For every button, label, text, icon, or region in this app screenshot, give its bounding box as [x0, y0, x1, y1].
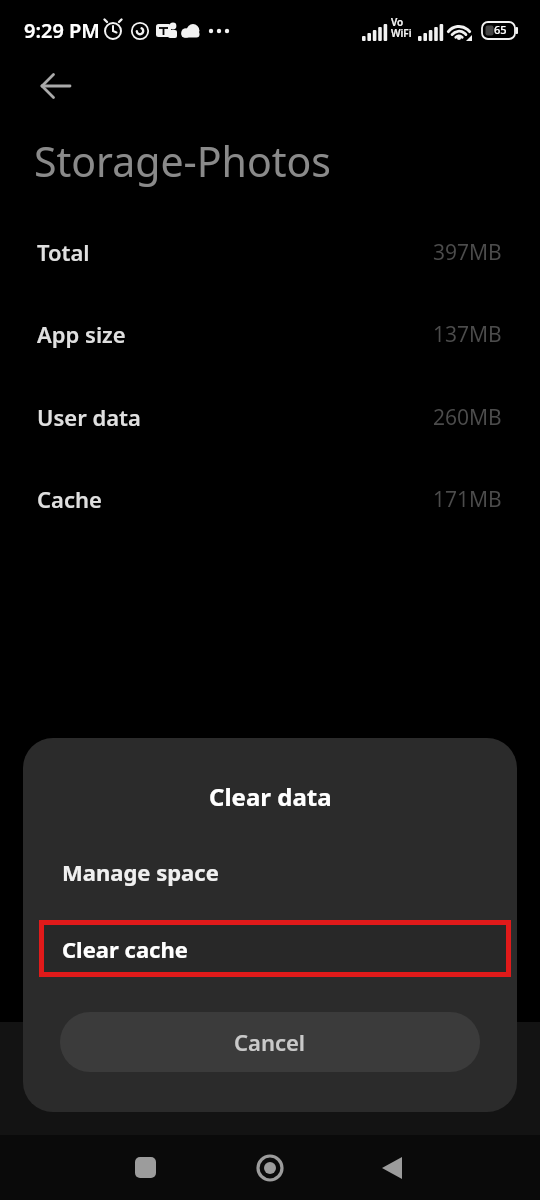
staticText: Total	[37, 237, 90, 267]
staticText: Storage-Photos	[34, 133, 331, 189]
staticText: Cache	[37, 484, 102, 514]
button[interactable]: App size	[37, 314, 502, 354]
button[interactable]	[110, 1140, 182, 1195]
staticText: User data	[37, 402, 141, 432]
staticText: 9:29 PM	[24, 17, 100, 44]
button[interactable]	[32, 62, 80, 110]
staticText: 397MB	[433, 238, 502, 267]
staticText: 260MB	[433, 403, 502, 432]
button[interactable]: Total	[37, 232, 502, 272]
staticText: Manage space	[62, 857, 219, 887]
staticText: 65	[494, 22, 507, 37]
staticText: 171MB	[433, 485, 502, 514]
button[interactable]: Cancel	[60, 1012, 480, 1072]
staticText: App size	[37, 319, 126, 349]
staticText: Vo WiFi	[391, 15, 412, 40]
staticText: Cancel	[234, 1027, 306, 1057]
button[interactable]	[234, 1140, 306, 1195]
staticText: 137MB	[433, 320, 502, 349]
button[interactable]: Manage space	[39, 848, 501, 896]
button[interactable]: Cache	[37, 479, 502, 519]
button[interactable]	[357, 1140, 429, 1195]
staticText: Clear cache	[62, 934, 188, 964]
staticText: Clear data	[209, 780, 332, 813]
button[interactable]: Clear cache	[39, 920, 511, 977]
button[interactable]: User data	[37, 397, 502, 437]
